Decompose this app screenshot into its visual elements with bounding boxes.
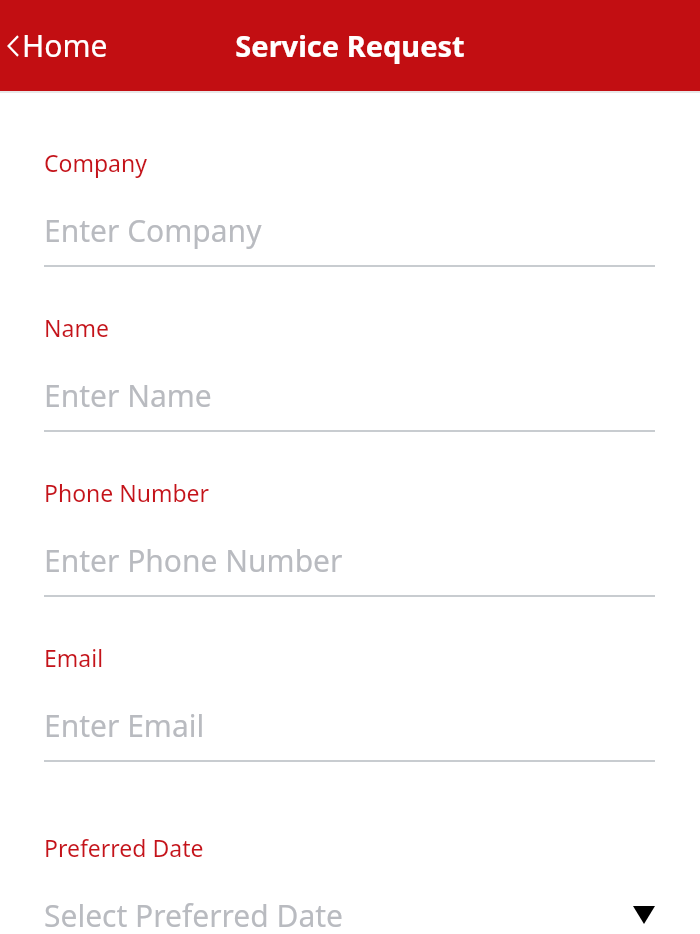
staticText: Enter Email	[44, 705, 655, 746]
button[interactable]: Email	[0, 642, 700, 762]
staticText: Company	[44, 147, 147, 178]
staticText: Home	[22, 25, 108, 66]
staticText: Name	[44, 312, 109, 343]
button[interactable]: Home	[0, 0, 120, 91]
button[interactable]: Name	[0, 312, 700, 432]
button[interactable]: Company	[0, 147, 700, 267]
staticText: Enter Phone Number	[44, 540, 655, 581]
staticText: Enter Name	[44, 375, 655, 416]
staticText: Select Preferred Date	[44, 895, 633, 934]
staticText: Preferred Date	[44, 832, 204, 863]
button[interactable]: Preferred Date	[0, 832, 700, 934]
button[interactable]: Phone Number	[0, 477, 700, 597]
staticText: Phone Number	[44, 477, 210, 508]
staticText: Service Request	[235, 26, 465, 65]
other: Open Preferred Date picker	[633, 906, 655, 924]
staticText: Enter Company	[44, 210, 655, 251]
staticText: Email	[44, 642, 104, 673]
